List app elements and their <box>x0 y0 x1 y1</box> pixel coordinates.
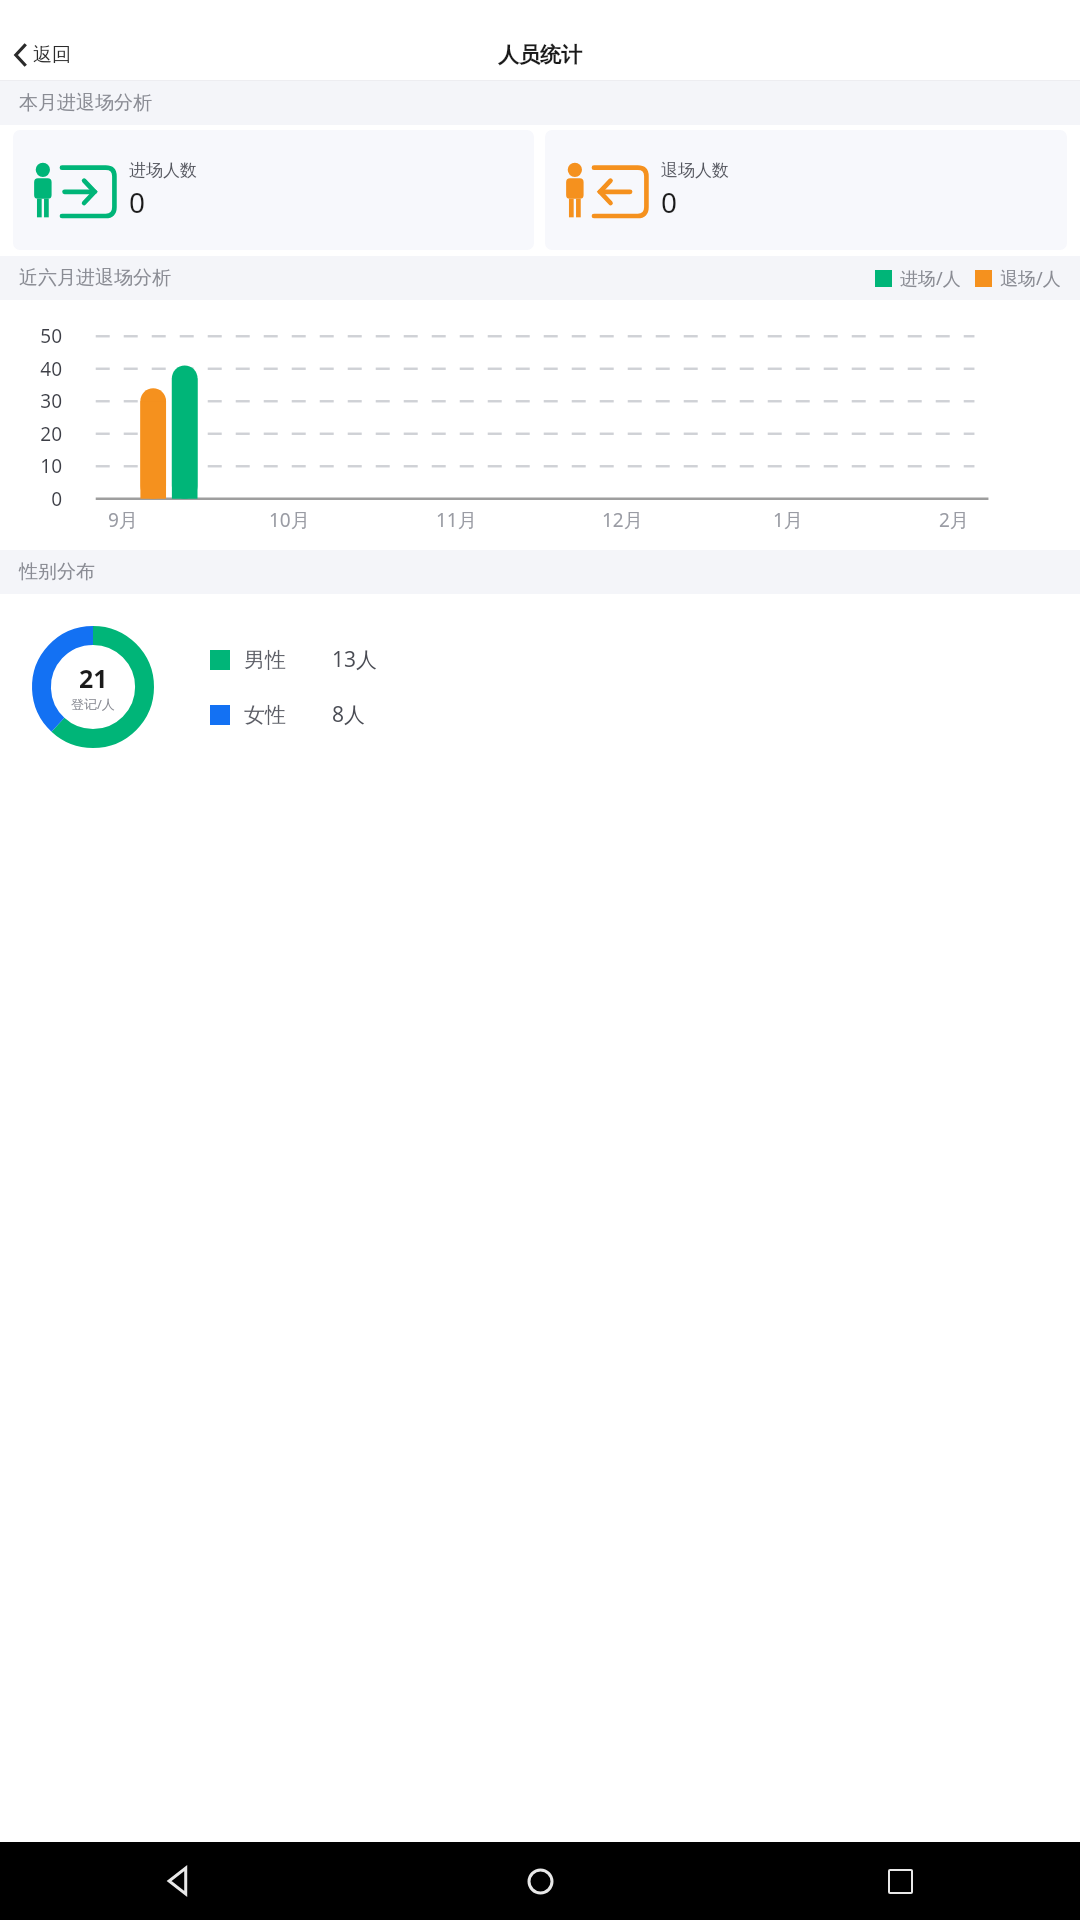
staticText: 进场/人 <box>900 266 961 291</box>
staticText: 40 <box>22 356 62 382</box>
staticText: 11月 <box>436 507 477 533</box>
staticText: 21 <box>79 661 108 695</box>
staticText: 进场人数 <box>129 160 197 181</box>
button[interactable]: Recents <box>720 1842 1080 1920</box>
staticText: 本月进退场分析 <box>19 91 152 115</box>
staticText: 12月 <box>602 507 643 533</box>
button[interactable]: 进场人数 <box>13 130 534 250</box>
other: 进场人数 <box>31 159 117 221</box>
staticText: 男性 <box>244 647 332 673</box>
button[interactable]: 退场/人 <box>975 266 1061 291</box>
staticText: 0 <box>661 183 678 221</box>
staticText: 人员统计 <box>498 42 582 68</box>
staticText: 13人 <box>332 645 378 674</box>
button[interactable]: Back <box>0 1842 360 1920</box>
staticText: 退场人数 <box>661 160 729 181</box>
staticText: 返回 <box>33 43 71 67</box>
button[interactable]: Home <box>360 1842 720 1920</box>
staticText: 近六月进退场分析 <box>19 266 171 290</box>
staticText: 10 <box>22 453 62 479</box>
staticText: 8人 <box>332 700 366 729</box>
button[interactable]: 男性 <box>210 645 378 674</box>
staticText: 0 <box>129 183 146 221</box>
staticText: 1月 <box>773 507 803 533</box>
staticText: 2月 <box>939 507 969 533</box>
button[interactable]: 女性 <box>210 700 366 729</box>
staticText: 50 <box>22 323 62 349</box>
staticText: 登记/人 <box>71 695 115 713</box>
button[interactable]: 进场/人 <box>875 266 961 291</box>
button[interactable]: 退场人数 <box>545 130 1067 250</box>
staticText: 9月 <box>108 507 138 533</box>
staticText: 30 <box>22 388 62 414</box>
staticText: 10月 <box>269 507 310 533</box>
staticText: 女性 <box>244 702 332 728</box>
button[interactable]: 返回 <box>0 37 85 73</box>
staticText: 退场/人 <box>1000 266 1061 291</box>
other: 退场人数 <box>563 159 649 221</box>
staticText: 0 <box>22 486 62 512</box>
staticText: 20 <box>22 421 62 447</box>
staticText: 性别分布 <box>19 560 95 584</box>
